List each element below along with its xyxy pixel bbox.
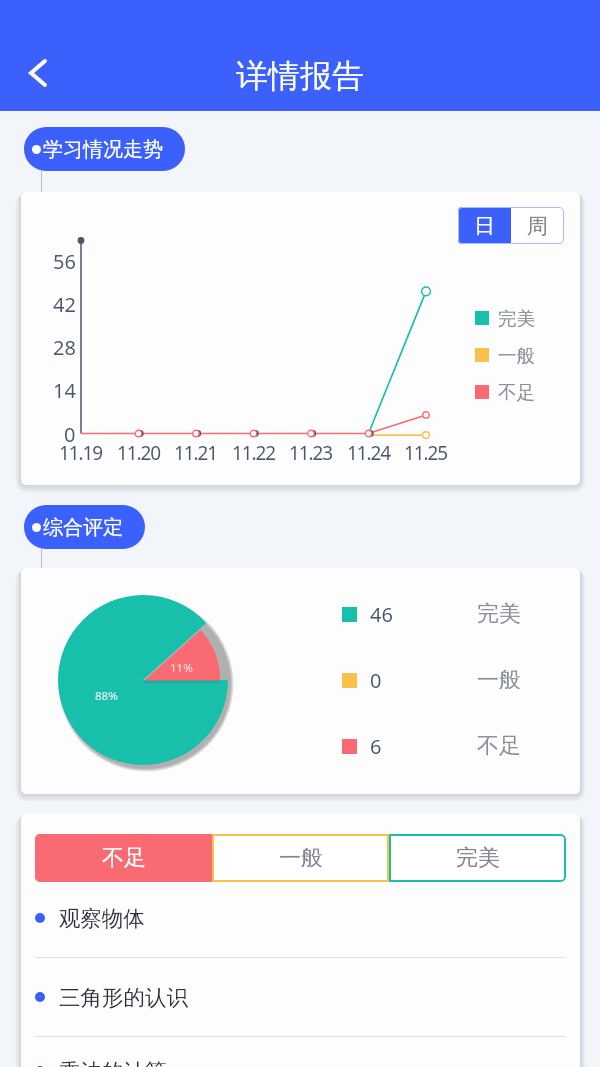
staticText: 11.23: [289, 440, 333, 466]
button[interactable]: Back: [10, 45, 66, 101]
button[interactable]: 不足: [35, 834, 212, 882]
staticText: 完美: [498, 307, 535, 330]
staticText: 综合评定: [43, 515, 123, 540]
button[interactable]: 学习情况走势: [24, 127, 185, 171]
staticText: 完美: [456, 844, 500, 872]
staticText: 11.24: [347, 440, 391, 466]
staticText: 11.22: [232, 440, 276, 466]
button[interactable]: 周: [511, 207, 564, 244]
staticText: 一般: [279, 844, 323, 872]
staticText: 三角形的认识: [59, 984, 188, 1011]
button[interactable]: 综合评定: [24, 505, 145, 549]
staticText: 46: [370, 601, 393, 628]
staticText: 不足: [498, 381, 535, 404]
staticText: 88%: [95, 688, 118, 704]
staticText: 乘法的计算: [59, 1058, 167, 1067]
staticText: 不足: [477, 732, 521, 760]
staticText: 不足: [102, 844, 146, 872]
staticText: 42: [53, 291, 76, 318]
staticText: 11.20: [117, 440, 161, 466]
staticText: 11.21: [174, 440, 218, 466]
staticText: 详情报告: [236, 56, 364, 96]
staticText: 一般: [477, 666, 521, 694]
staticText: 完美: [477, 600, 521, 628]
staticText: 周: [527, 213, 548, 239]
staticText: 11.19: [59, 440, 103, 466]
staticText: 11%: [170, 660, 193, 676]
button[interactable]: 观察物体: [21, 879, 580, 957]
staticText: 学习情况走势: [43, 137, 163, 162]
staticText: 14: [53, 377, 76, 404]
staticText: 6: [370, 733, 382, 760]
button[interactable]: 乘法的计算: [21, 1032, 580, 1067]
staticText: 一般: [498, 344, 535, 367]
staticText: 11.25: [404, 440, 448, 466]
staticText: 0: [370, 667, 382, 694]
button[interactable]: 完美: [389, 834, 566, 882]
button[interactable]: 三角形的认识: [21, 958, 580, 1036]
button[interactable]: 日: [458, 207, 511, 244]
staticText: 日: [474, 213, 495, 239]
staticText: 56: [53, 248, 76, 275]
staticText: 观察物体: [59, 905, 145, 932]
staticText: 0: [64, 421, 76, 448]
button[interactable]: 一般: [212, 834, 389, 882]
staticText: 28: [53, 334, 76, 361]
